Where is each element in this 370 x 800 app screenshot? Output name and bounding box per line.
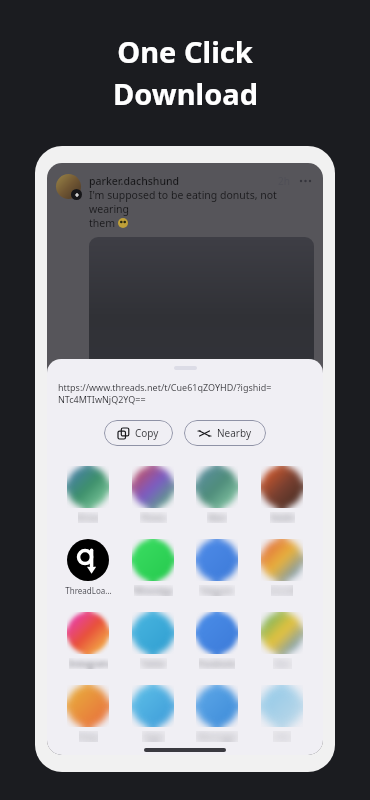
- button[interactable]: Reddit: [253, 464, 311, 525]
- staticText: Reddit: [270, 512, 295, 523]
- button[interactable]: Twitter: [124, 610, 182, 671]
- button[interactable]: Messenger: [188, 683, 246, 744]
- staticText: Facebook: [199, 658, 235, 669]
- staticText: Nearby: [217, 426, 252, 440]
- button[interactable]: Meet: [188, 464, 246, 525]
- button[interactable]: Chat: [253, 683, 311, 744]
- button[interactable]: Drive: [59, 464, 117, 525]
- button[interactable]: Telegram: [188, 537, 246, 598]
- button[interactable]: Gmail: [253, 537, 311, 598]
- staticText: Gmail: [271, 585, 293, 596]
- staticText: NTc4MTIwNjQ2YQ==: [58, 393, 146, 405]
- staticText: WhatsApp: [134, 585, 173, 596]
- staticText: ThreadLoa...: [65, 585, 112, 596]
- button[interactable]: Photos: [124, 464, 182, 525]
- staticText: Keep: [79, 731, 98, 742]
- staticText: parker.dachshund: [89, 174, 180, 188]
- staticText: Drive: [78, 512, 98, 523]
- staticText: Telegram: [199, 585, 235, 596]
- staticText: Instagram: [69, 658, 108, 669]
- staticText: One Click: [117, 32, 253, 71]
- staticText: Download: [113, 74, 258, 113]
- staticText: https://www.threads.net/t/Cue61qZOYHD/?i…: [58, 381, 272, 393]
- button[interactable]: ThreadLoa...: [59, 537, 117, 598]
- staticText: Skype: [142, 731, 165, 742]
- staticText: Copy: [135, 426, 159, 440]
- staticText: I'm supposed to be eating donuts, not we…: [89, 188, 314, 216]
- staticText: Photos: [140, 512, 167, 523]
- button[interactable]: Skype: [124, 683, 182, 744]
- button[interactable]: Docs: [253, 610, 311, 671]
- staticText: Meet: [207, 512, 227, 523]
- staticText: Docs: [273, 658, 292, 669]
- staticText: Messenger: [196, 731, 238, 742]
- button[interactable]: Keep: [59, 683, 117, 744]
- button[interactable]: Nearby: [184, 420, 266, 446]
- button[interactable]: More options: [299, 175, 314, 187]
- button[interactable]: Facebook: [188, 610, 246, 671]
- button[interactable]: WhatsApp: [124, 537, 182, 598]
- button[interactable]: Instagram: [59, 610, 117, 671]
- staticText: them: [89, 216, 118, 230]
- button[interactable]: Copy: [104, 420, 173, 446]
- staticText: Twitter: [140, 658, 167, 669]
